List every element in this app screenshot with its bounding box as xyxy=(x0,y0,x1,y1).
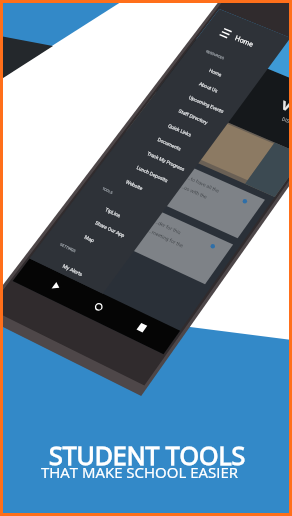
staticText: STUDENT TOOLS xyxy=(49,438,246,472)
staticText: THAT MAKE SCHOOL EASIER xyxy=(41,462,238,482)
button[interactable] xyxy=(0,0,292,516)
